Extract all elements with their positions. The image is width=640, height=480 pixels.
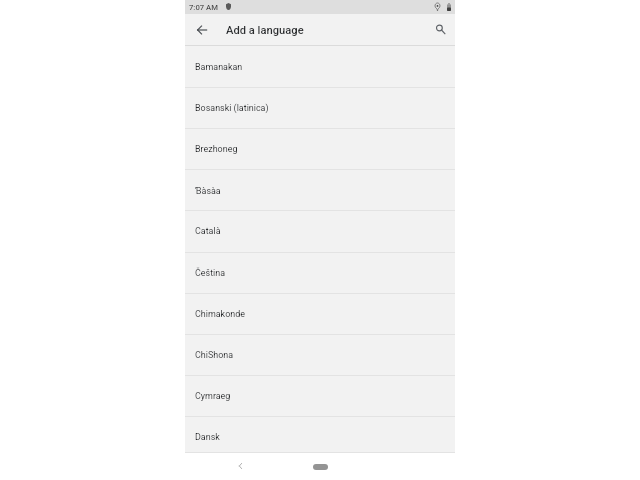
- staticText: Dansk: [195, 432, 220, 442]
- button[interactable]: ChiShona: [185, 334, 455, 375]
- staticText: Čeština: [195, 268, 226, 278]
- staticText: Chimakonde: [195, 309, 245, 319]
- button[interactable]: Català: [185, 210, 455, 251]
- button[interactable]: Search: [426, 16, 454, 44]
- staticText: Cymraeg: [195, 391, 231, 401]
- button[interactable]: Bamanakan: [185, 46, 455, 87]
- button[interactable]: Dansk: [185, 416, 455, 453]
- button[interactable]: Navigate up: [188, 16, 216, 44]
- button[interactable]: Back: [231, 457, 249, 475]
- button[interactable]: Bosanski (latinica): [185, 87, 455, 128]
- staticText: 7:07 AM: [189, 3, 218, 12]
- button[interactable]: Brezhoneg: [185, 128, 455, 169]
- staticText: Brezhoneg: [195, 144, 238, 154]
- staticText: Bamanakan: [195, 62, 243, 72]
- button[interactable]: Ɓàsàa: [185, 169, 455, 210]
- button[interactable]: Cymraeg: [185, 375, 455, 416]
- staticText: Català: [195, 226, 221, 236]
- staticText: ChiShona: [195, 350, 234, 360]
- staticText: Ɓàsàa: [195, 184, 221, 196]
- button[interactable]: Chimakonde: [185, 293, 455, 334]
- staticText: Add a language: [226, 24, 304, 37]
- button[interactable]: Čeština: [185, 252, 455, 293]
- button[interactable]: Home: [313, 464, 328, 470]
- staticText: Bosanski (latinica): [195, 103, 269, 113]
